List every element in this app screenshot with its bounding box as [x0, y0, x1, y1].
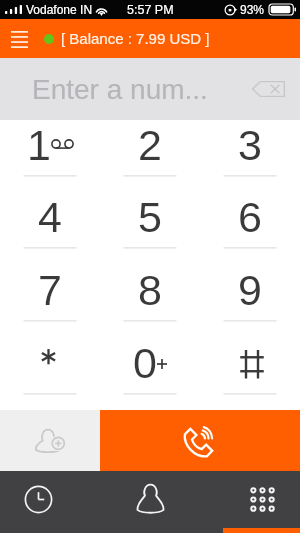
staticText: 3 — [238, 121, 262, 169]
button[interactable]: 9 — [200, 264, 300, 337]
staticText: 6 — [238, 193, 262, 241]
button[interactable]: 5 — [100, 192, 200, 264]
button[interactable]: 8 — [100, 264, 200, 337]
button[interactable] — [200, 337, 300, 410]
staticText: 9 — [238, 266, 262, 314]
staticText: Enter a num... — [32, 74, 208, 105]
button[interactable]: 4 — [0, 192, 100, 264]
staticText: 7 — [38, 266, 62, 314]
button[interactable]: Call — [100, 410, 300, 471]
button[interactable]: 3 — [200, 120, 300, 192]
button[interactable]: 7 — [0, 264, 100, 337]
button[interactable]: Contacts — [94, 471, 206, 533]
button[interactable]: Menu — [3, 23, 35, 55]
staticText: 5 — [138, 193, 162, 241]
staticText: 2 — [138, 121, 162, 169]
staticText: Vodafone IN — [26, 3, 93, 16]
staticText: 5:57 PM — [127, 3, 174, 17]
staticText: 1 — [27, 121, 51, 169]
button[interactable]: 1 — [0, 120, 100, 192]
button[interactable]: Dialpad — [206, 471, 300, 533]
button[interactable] — [0, 337, 100, 410]
button[interactable]: Recent calls — [0, 471, 94, 533]
button[interactable]: Backspace — [247, 72, 289, 106]
staticText: 8 — [138, 266, 162, 314]
button[interactable]: 2 — [100, 120, 200, 192]
staticText: 4 — [38, 193, 62, 241]
staticText: 93% — [240, 3, 265, 16]
staticText: 0 — [133, 339, 157, 387]
button[interactable]: 6 — [200, 192, 300, 264]
button[interactable]: Add contact — [0, 410, 100, 471]
button[interactable]: 0 — [100, 337, 200, 410]
staticText: [ Balance : 7.99 USD ] — [61, 30, 210, 47]
